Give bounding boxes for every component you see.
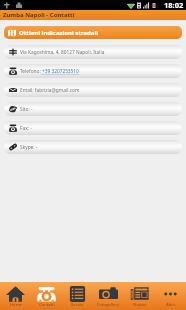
button[interactable]: Email: fabrizia@gmail.com [4, 83, 182, 97]
staticText: Zumba Napoli - Contatti [3, 11, 75, 19]
button[interactable]: Fotogallery [93, 282, 124, 310]
staticText: Contatti [39, 302, 55, 308]
staticText: Fotogallery [97, 302, 120, 308]
button[interactable]: Skype: - [4, 140, 182, 154]
staticText: Home [10, 302, 22, 308]
staticText: Notizie [133, 302, 147, 308]
staticText: Telefono: +39 3207253510 [20, 68, 79, 75]
button[interactable]: Servizi [62, 282, 93, 310]
staticText: Skype: - [20, 144, 38, 151]
staticText: Ottieni indicazioni stradali [19, 29, 99, 37]
button[interactable]: Ottieni indicazioni stradali [4, 26, 182, 39]
staticText: Sito: - [20, 106, 33, 113]
staticText: Servizi [71, 302, 84, 308]
button[interactable]: Home [0, 282, 31, 310]
button[interactable]: Altro [155, 282, 186, 310]
button[interactable]: Via Kagoshima, 4, 80127 Napoli, Italia [4, 45, 182, 59]
staticText: Fax: - [20, 125, 32, 132]
button[interactable]: Notizie [124, 282, 155, 310]
staticText: Altro [166, 302, 176, 308]
button[interactable]: Fax: - [4, 121, 182, 135]
staticText: Via Kagoshima, 4, 80127 Napoli, Italia [20, 49, 105, 56]
button[interactable]: Telefono: +39 3207253510 [4, 64, 182, 78]
button[interactable]: Contatti [31, 282, 62, 310]
staticText: 18:02 [164, 0, 184, 10]
staticText: Email: fabrizia@gmail.com [20, 87, 80, 94]
button[interactable]: Sito: - [4, 102, 182, 116]
